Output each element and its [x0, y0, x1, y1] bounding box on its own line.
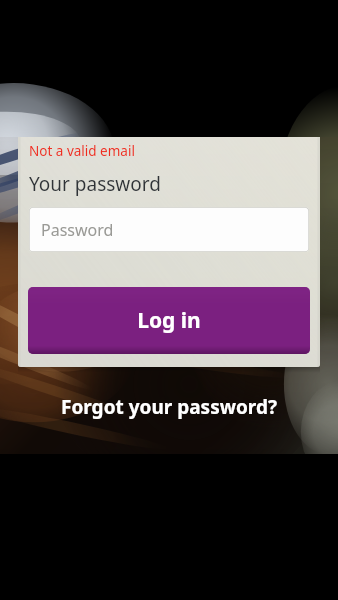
button[interactable]: Forgot your password?	[0, 390, 338, 424]
staticText: Log in	[137, 306, 201, 335]
staticText: Forgot your password?	[61, 394, 277, 420]
staticText: Your password	[29, 171, 161, 197]
button[interactable]: Password	[29, 207, 309, 252]
button[interactable]: Log in	[28, 287, 310, 354]
staticText: Password	[41, 219, 114, 241]
staticText: Not a valid email	[29, 142, 135, 160]
